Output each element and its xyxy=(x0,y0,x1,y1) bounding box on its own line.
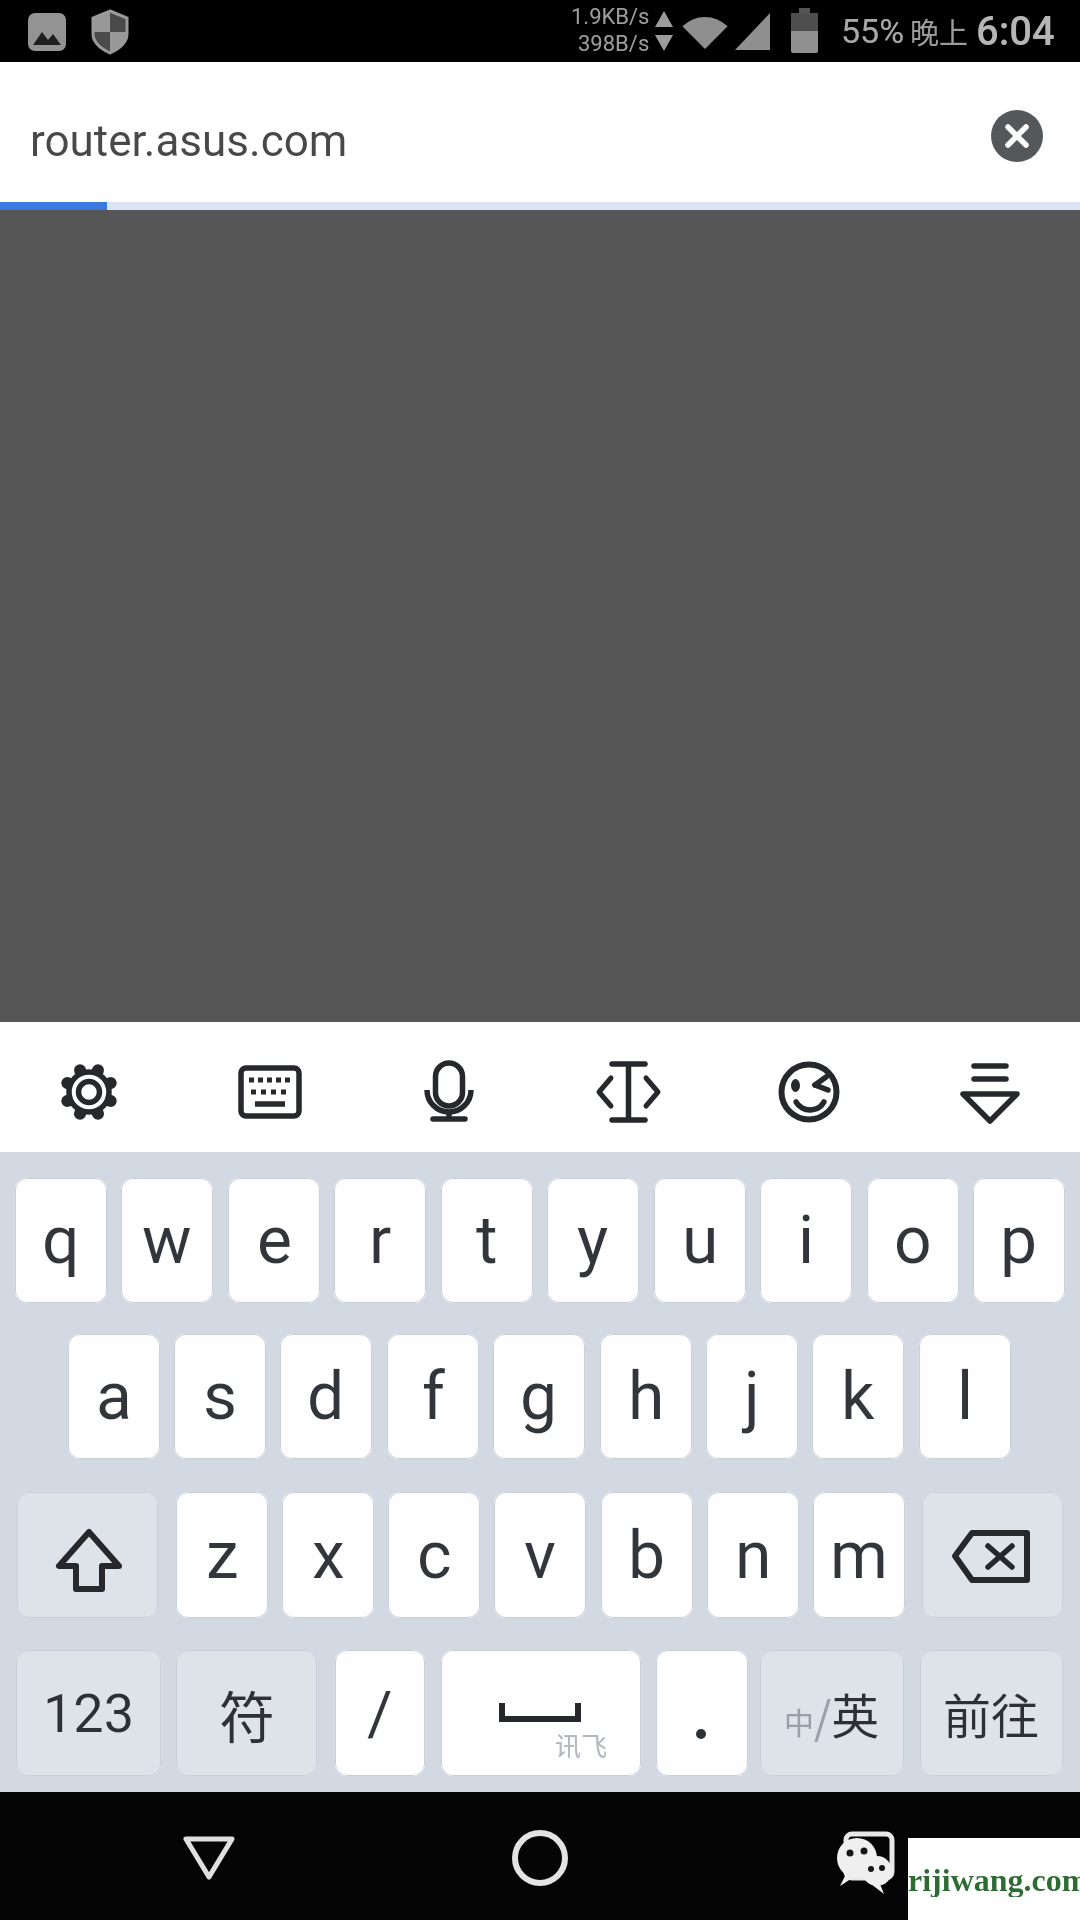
button[interactable]: s xyxy=(174,1334,266,1459)
button[interactable]: 123 xyxy=(16,1650,161,1776)
button[interactable] xyxy=(810,1816,910,1906)
button[interactable]: f xyxy=(387,1334,479,1459)
staticText: n xyxy=(735,1517,772,1594)
button[interactable] xyxy=(656,1650,748,1776)
button[interactable]: b xyxy=(601,1492,693,1618)
button[interactable] xyxy=(404,1047,494,1137)
button[interactable]: v xyxy=(494,1492,586,1618)
staticText: f xyxy=(422,1358,445,1435)
staticText: v xyxy=(524,1517,556,1594)
button[interactable]: z xyxy=(176,1492,268,1618)
button[interactable]: h xyxy=(600,1334,692,1459)
staticText: b xyxy=(628,1517,666,1594)
button[interactable]: e xyxy=(228,1178,320,1303)
staticText: rijiwang.com xyxy=(908,1862,1080,1897)
button[interactable]: 符 xyxy=(176,1650,317,1776)
staticText: k xyxy=(841,1358,875,1435)
button[interactable]: y xyxy=(547,1178,639,1303)
staticText: c xyxy=(417,1517,452,1594)
staticText: / xyxy=(367,1677,393,1750)
button[interactable]: a xyxy=(68,1334,160,1459)
staticText: u xyxy=(682,1202,719,1279)
staticText: y xyxy=(577,1202,609,1279)
button[interactable]: t xyxy=(441,1178,533,1303)
button[interactable]: w xyxy=(121,1178,213,1303)
button[interactable]: g xyxy=(493,1334,585,1459)
staticText: x xyxy=(312,1517,345,1594)
staticText: p xyxy=(1000,1202,1038,1279)
button[interactable] xyxy=(225,1047,315,1137)
button[interactable] xyxy=(17,1492,158,1618)
staticText: 123 xyxy=(43,1682,135,1745)
staticText: router.asus.com xyxy=(30,115,348,167)
button[interactable] xyxy=(583,1047,673,1137)
staticText: j xyxy=(744,1358,760,1435)
button[interactable]: o xyxy=(867,1178,959,1303)
staticText: l xyxy=(957,1358,974,1435)
button[interactable] xyxy=(161,1810,257,1906)
button[interactable]: 前往 xyxy=(920,1650,1063,1776)
staticText: s xyxy=(203,1358,238,1435)
staticText: q xyxy=(42,1202,80,1279)
button[interactable] xyxy=(763,1047,853,1137)
staticText: e xyxy=(257,1202,292,1279)
staticText: m xyxy=(830,1517,888,1594)
button[interactable]: d xyxy=(280,1334,372,1459)
button[interactable]: x xyxy=(282,1492,374,1618)
staticText: i xyxy=(798,1202,815,1279)
button[interactable] xyxy=(991,110,1043,162)
staticText: a xyxy=(96,1358,132,1435)
staticText: 398B/s xyxy=(578,31,650,57)
button[interactable] xyxy=(492,1810,588,1906)
staticText: 讯飞 xyxy=(555,1726,608,1764)
staticText: 晚上 xyxy=(910,10,969,52)
staticText: 55% xyxy=(841,11,905,51)
staticText: d xyxy=(307,1358,345,1435)
button[interactable]: p xyxy=(973,1178,1065,1303)
staticText: g xyxy=(520,1358,558,1435)
button[interactable]: m xyxy=(813,1492,905,1618)
staticText: 1.9KB/s xyxy=(571,4,650,30)
button[interactable]: n xyxy=(707,1492,799,1618)
button[interactable]: r xyxy=(334,1178,426,1303)
staticText: r xyxy=(369,1202,392,1279)
button[interactable]: u xyxy=(654,1178,746,1303)
button[interactable]: j xyxy=(706,1334,798,1459)
button[interactable] xyxy=(922,1492,1063,1618)
button[interactable] xyxy=(945,1047,1035,1137)
button[interactable]: c xyxy=(388,1492,480,1618)
button[interactable] xyxy=(44,1047,134,1137)
staticText: 6:04 xyxy=(976,8,1055,55)
staticText: w xyxy=(142,1202,192,1279)
button[interactable]: 中/英 xyxy=(760,1650,904,1776)
staticText: z xyxy=(206,1517,239,1594)
staticText: 符 xyxy=(219,1673,275,1754)
staticText: 中/英 xyxy=(784,1678,880,1748)
staticText: o xyxy=(894,1202,932,1279)
button[interactable]: / xyxy=(335,1650,425,1776)
staticText: t xyxy=(476,1202,498,1279)
button[interactable]: k xyxy=(812,1334,904,1459)
button[interactable]: 讯飞 xyxy=(441,1650,641,1776)
staticText: h xyxy=(628,1358,665,1435)
button[interactable]: l xyxy=(919,1334,1011,1459)
button[interactable]: i xyxy=(760,1178,852,1303)
staticText: 前往 xyxy=(943,1678,1040,1748)
button[interactable]: q xyxy=(15,1178,107,1303)
